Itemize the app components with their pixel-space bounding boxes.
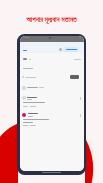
button[interactable]: Send bbox=[70, 75, 79, 79]
button[interactable] bbox=[20, 92, 84, 108]
button[interactable] bbox=[20, 84, 84, 92]
button[interactable]: Account bbox=[59, 48, 62, 51]
button[interactable] bbox=[63, 47, 79, 52]
staticText: আপনার মূল্যবান মতামত bbox=[26, 15, 77, 25]
button[interactable] bbox=[20, 109, 84, 128]
